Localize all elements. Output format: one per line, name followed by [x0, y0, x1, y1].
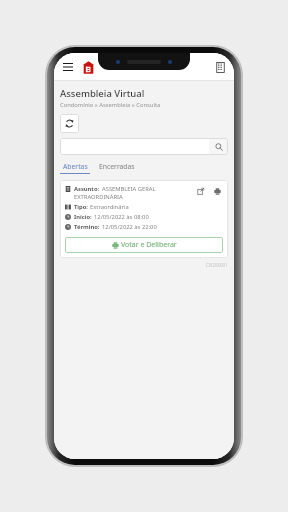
- staticText: Assembleia Virtual: [60, 87, 145, 100]
- button[interactable]: Abrir: [194, 185, 206, 197]
- button[interactable]: Votar e Deliberar: [65, 237, 223, 253]
- button[interactable]: Atualizar: [60, 114, 79, 133]
- staticText: Assunto:: [74, 185, 100, 193]
- staticText: Tipo:: [74, 203, 88, 211]
- button[interactable]: Condomínio: [212, 59, 228, 75]
- button[interactable]: Abertas: [60, 162, 90, 174]
- staticText: CN20X001: [206, 262, 228, 268]
- button[interactable]: Encerradas: [99, 162, 135, 174]
- staticText: 12/05/2022 às 22:00: [102, 223, 157, 231]
- staticText: Votar e Deliberar: [121, 240, 177, 250]
- staticText: Condomínio » Assembleia » Consulta: [60, 101, 161, 109]
- staticText: ASSEMBLEIA GERAL: [102, 185, 156, 193]
- button[interactable]: Menu: [60, 59, 76, 75]
- staticText: Término:: [74, 223, 100, 231]
- staticText: Encerradas: [99, 162, 135, 171]
- staticText: Abertas: [63, 162, 88, 171]
- staticText: 12/05/2022 às 08:00: [94, 213, 149, 221]
- staticText: Início:: [74, 213, 92, 221]
- button[interactable]: Pesquisar: [209, 138, 228, 155]
- button[interactable]: Logo: [79, 58, 97, 76]
- staticText: EXTRAORDINÁRIA: [74, 193, 123, 201]
- button[interactable]: [60, 138, 209, 155]
- button[interactable]: Imprimir: [211, 185, 223, 197]
- staticText: Extraordinária: [90, 203, 129, 211]
